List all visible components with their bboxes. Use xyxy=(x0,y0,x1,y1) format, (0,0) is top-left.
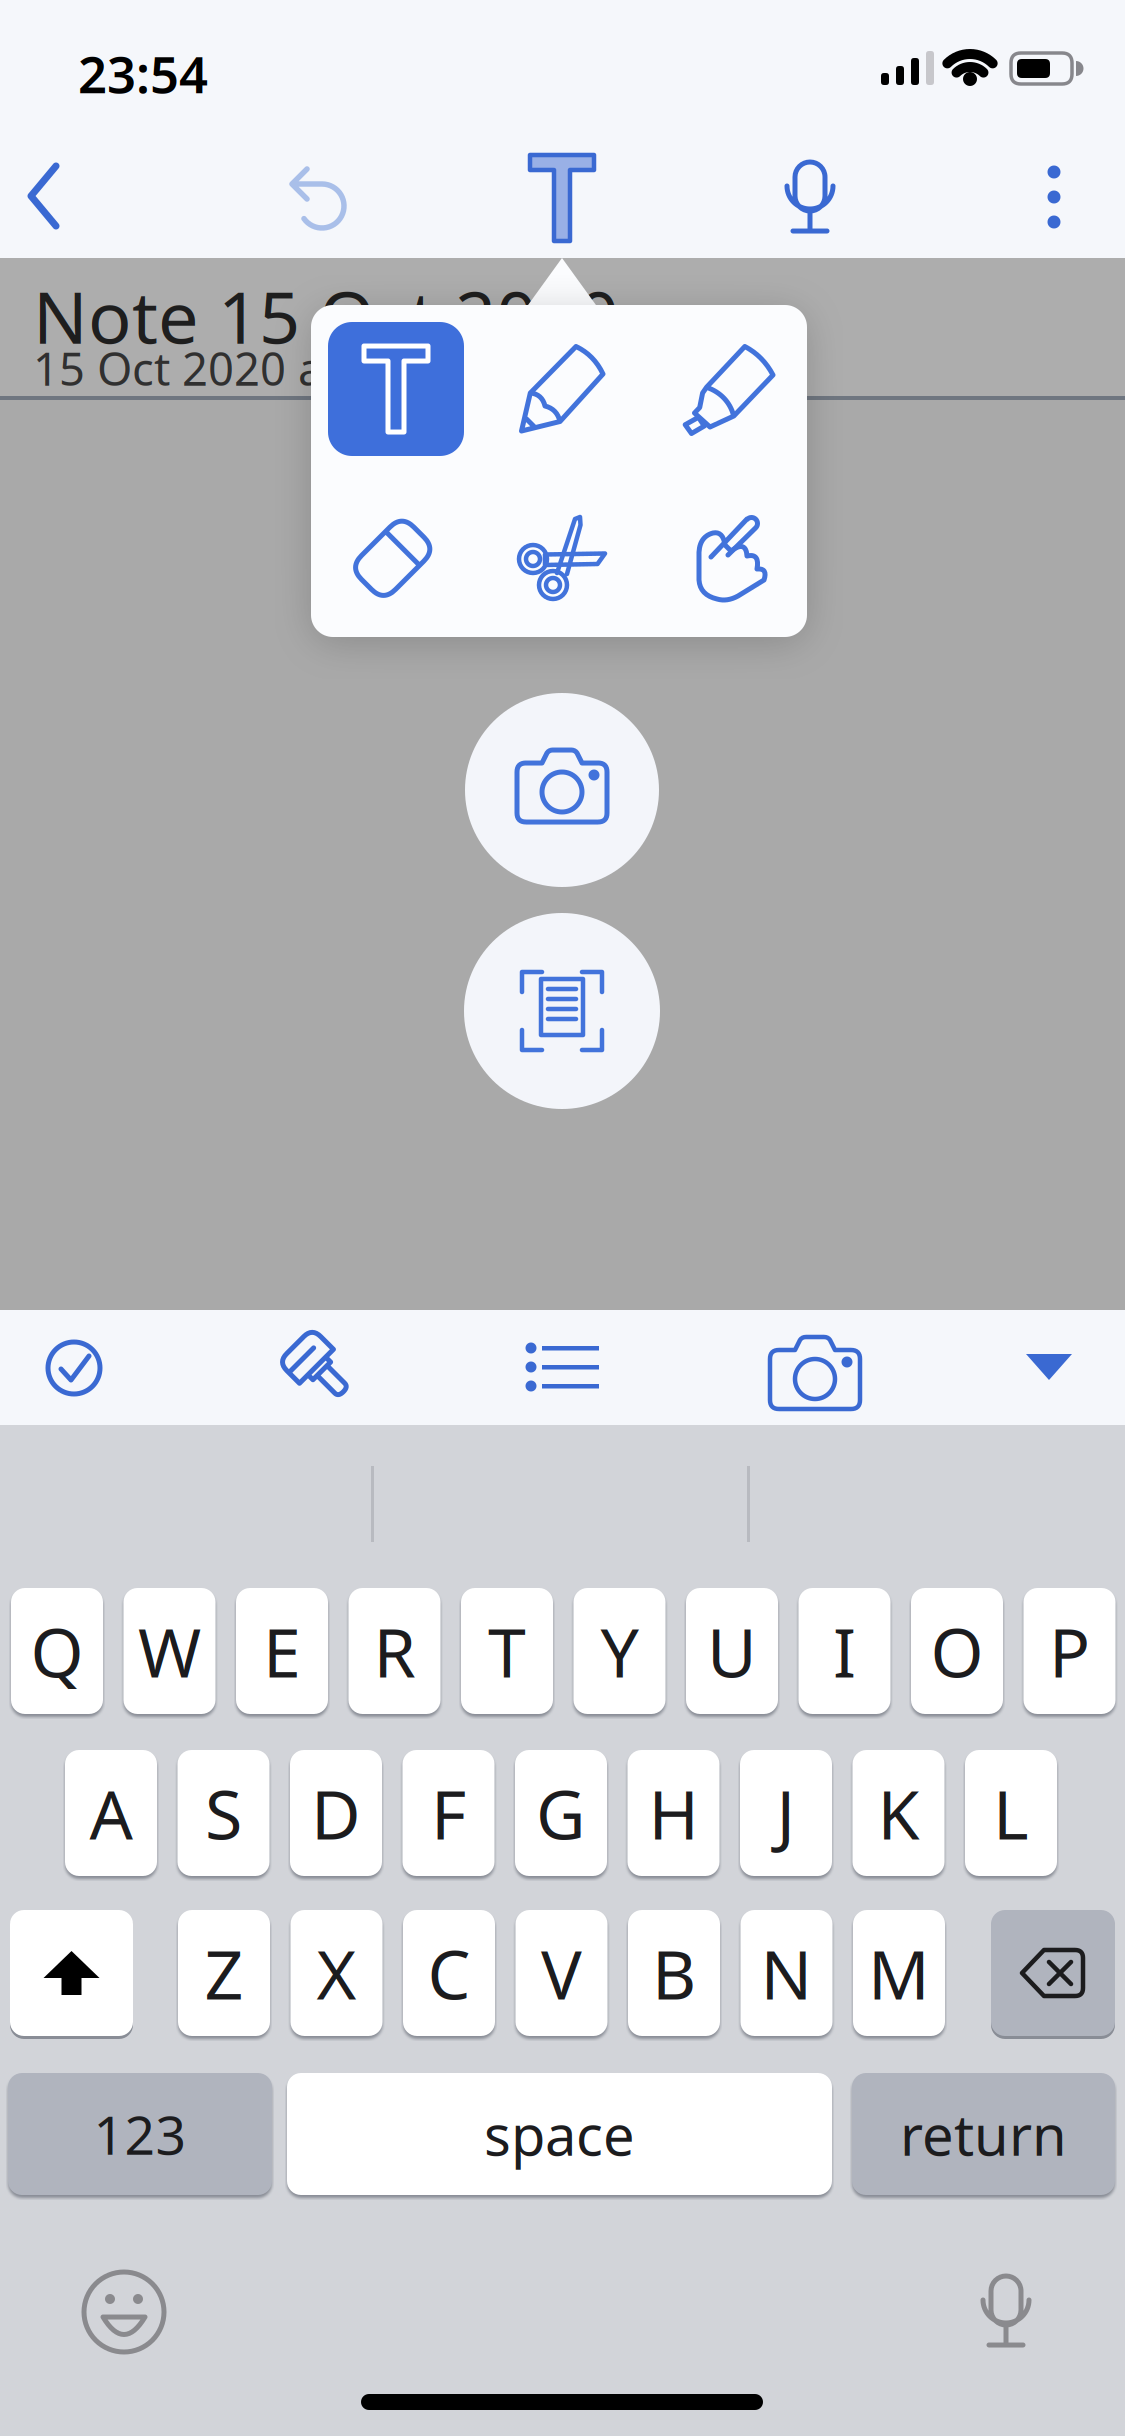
staticText: Q xyxy=(30,1606,83,1696)
button[interactable]: V xyxy=(515,1910,607,2036)
button[interactable]: Camera xyxy=(761,1321,851,1411)
button[interactable]: W xyxy=(123,1588,215,1714)
button[interactable]: Highlighter tool xyxy=(668,326,798,456)
staticText: Note 15 Oct 2020 xyxy=(33,268,619,364)
staticText: S xyxy=(205,1768,242,1858)
button[interactable]: G xyxy=(515,1750,607,1876)
button[interactable]: Select tool xyxy=(667,493,797,623)
staticText: Z xyxy=(204,1928,243,2018)
button[interactable]: E xyxy=(236,1588,328,1714)
staticText: T xyxy=(488,1606,526,1696)
button[interactable]: N xyxy=(740,1910,832,2036)
staticText: return xyxy=(900,2097,1067,2171)
button[interactable]: Take photo xyxy=(465,693,659,887)
button[interactable]: K xyxy=(852,1750,944,1876)
button[interactable]: F xyxy=(402,1750,494,1876)
staticText: 15 Oct 2020 at 23:53 xyxy=(33,338,467,398)
button[interactable]: A xyxy=(65,1750,157,1876)
staticText: space xyxy=(484,2097,635,2171)
button[interactable]: Q xyxy=(11,1588,103,1714)
button[interactable]: L xyxy=(965,1750,1057,1876)
button[interactable]: Shift xyxy=(10,1910,133,2036)
staticText: W xyxy=(138,1606,201,1696)
staticText: R xyxy=(373,1606,415,1696)
button[interactable]: Z xyxy=(178,1910,270,2036)
staticText: K xyxy=(877,1768,919,1858)
button[interactable]: Undo xyxy=(276,156,364,244)
staticText: X xyxy=(316,1928,356,2018)
staticText: P xyxy=(1049,1606,1090,1696)
button[interactable]: H xyxy=(627,1750,719,1876)
button[interactable]: O xyxy=(911,1588,1003,1714)
staticText: J xyxy=(776,1768,795,1858)
button[interactable]: M xyxy=(853,1910,945,2036)
staticText: Y xyxy=(600,1606,638,1696)
button[interactable]: Delete xyxy=(991,1910,1115,2036)
staticText: G xyxy=(536,1768,586,1858)
button[interactable]: space xyxy=(287,2073,832,2195)
button[interactable]: Dismiss keyboard xyxy=(1004,1322,1094,1412)
button[interactable]: Format brush xyxy=(275,1322,365,1412)
staticText: A xyxy=(89,1768,132,1858)
button[interactable]: return xyxy=(852,2073,1115,2195)
button[interactable]: Dictation xyxy=(960,2266,1048,2354)
staticText: N xyxy=(760,1928,812,2018)
button[interactable]: S xyxy=(177,1750,269,1876)
button[interactable]: P xyxy=(1023,1588,1115,1714)
button[interactable]: B xyxy=(628,1910,720,2036)
button[interactable]: 123 xyxy=(8,2073,272,2195)
button[interactable]: Lists xyxy=(517,1322,607,1412)
staticText: F xyxy=(431,1768,466,1858)
button[interactable]: More xyxy=(1010,153,1098,241)
button[interactable]: Pen tool xyxy=(499,324,629,454)
staticText: C xyxy=(427,1928,470,2018)
button[interactable]: I xyxy=(798,1588,890,1714)
button[interactable]: Checklist xyxy=(29,1323,119,1413)
staticText: O xyxy=(930,1606,983,1696)
button[interactable]: U xyxy=(686,1588,778,1714)
button[interactable]: Y xyxy=(573,1588,665,1714)
button[interactable]: Dictation xyxy=(766,154,854,242)
button[interactable]: Scan document xyxy=(464,913,660,1109)
staticText: H xyxy=(648,1768,698,1858)
button[interactable]: R xyxy=(348,1588,440,1714)
staticText: D xyxy=(311,1768,361,1858)
staticText: V xyxy=(541,1928,582,2018)
staticText: L xyxy=(993,1768,1029,1858)
staticText: 23:54 xyxy=(78,40,208,107)
button[interactable]: D xyxy=(290,1750,382,1876)
button[interactable]: Lasso tool xyxy=(499,494,629,624)
button[interactable]: Eraser tool xyxy=(327,494,457,624)
staticText: 123 xyxy=(93,2099,186,2169)
staticText: B xyxy=(652,1928,696,2018)
button[interactable]: Back xyxy=(0,153,88,241)
button[interactable]: T xyxy=(461,1588,553,1714)
button[interactable]: C xyxy=(403,1910,495,2036)
button[interactable]: Emoji xyxy=(80,2268,168,2356)
button[interactable]: Text tool xyxy=(514,150,610,246)
staticText: U xyxy=(707,1606,757,1696)
staticText: I xyxy=(833,1606,856,1696)
button[interactable]: J xyxy=(740,1750,832,1876)
button[interactable]: Text tool xyxy=(328,322,464,456)
staticText: E xyxy=(263,1606,301,1696)
button[interactable]: X xyxy=(290,1910,382,2036)
staticText: M xyxy=(868,1928,930,2018)
